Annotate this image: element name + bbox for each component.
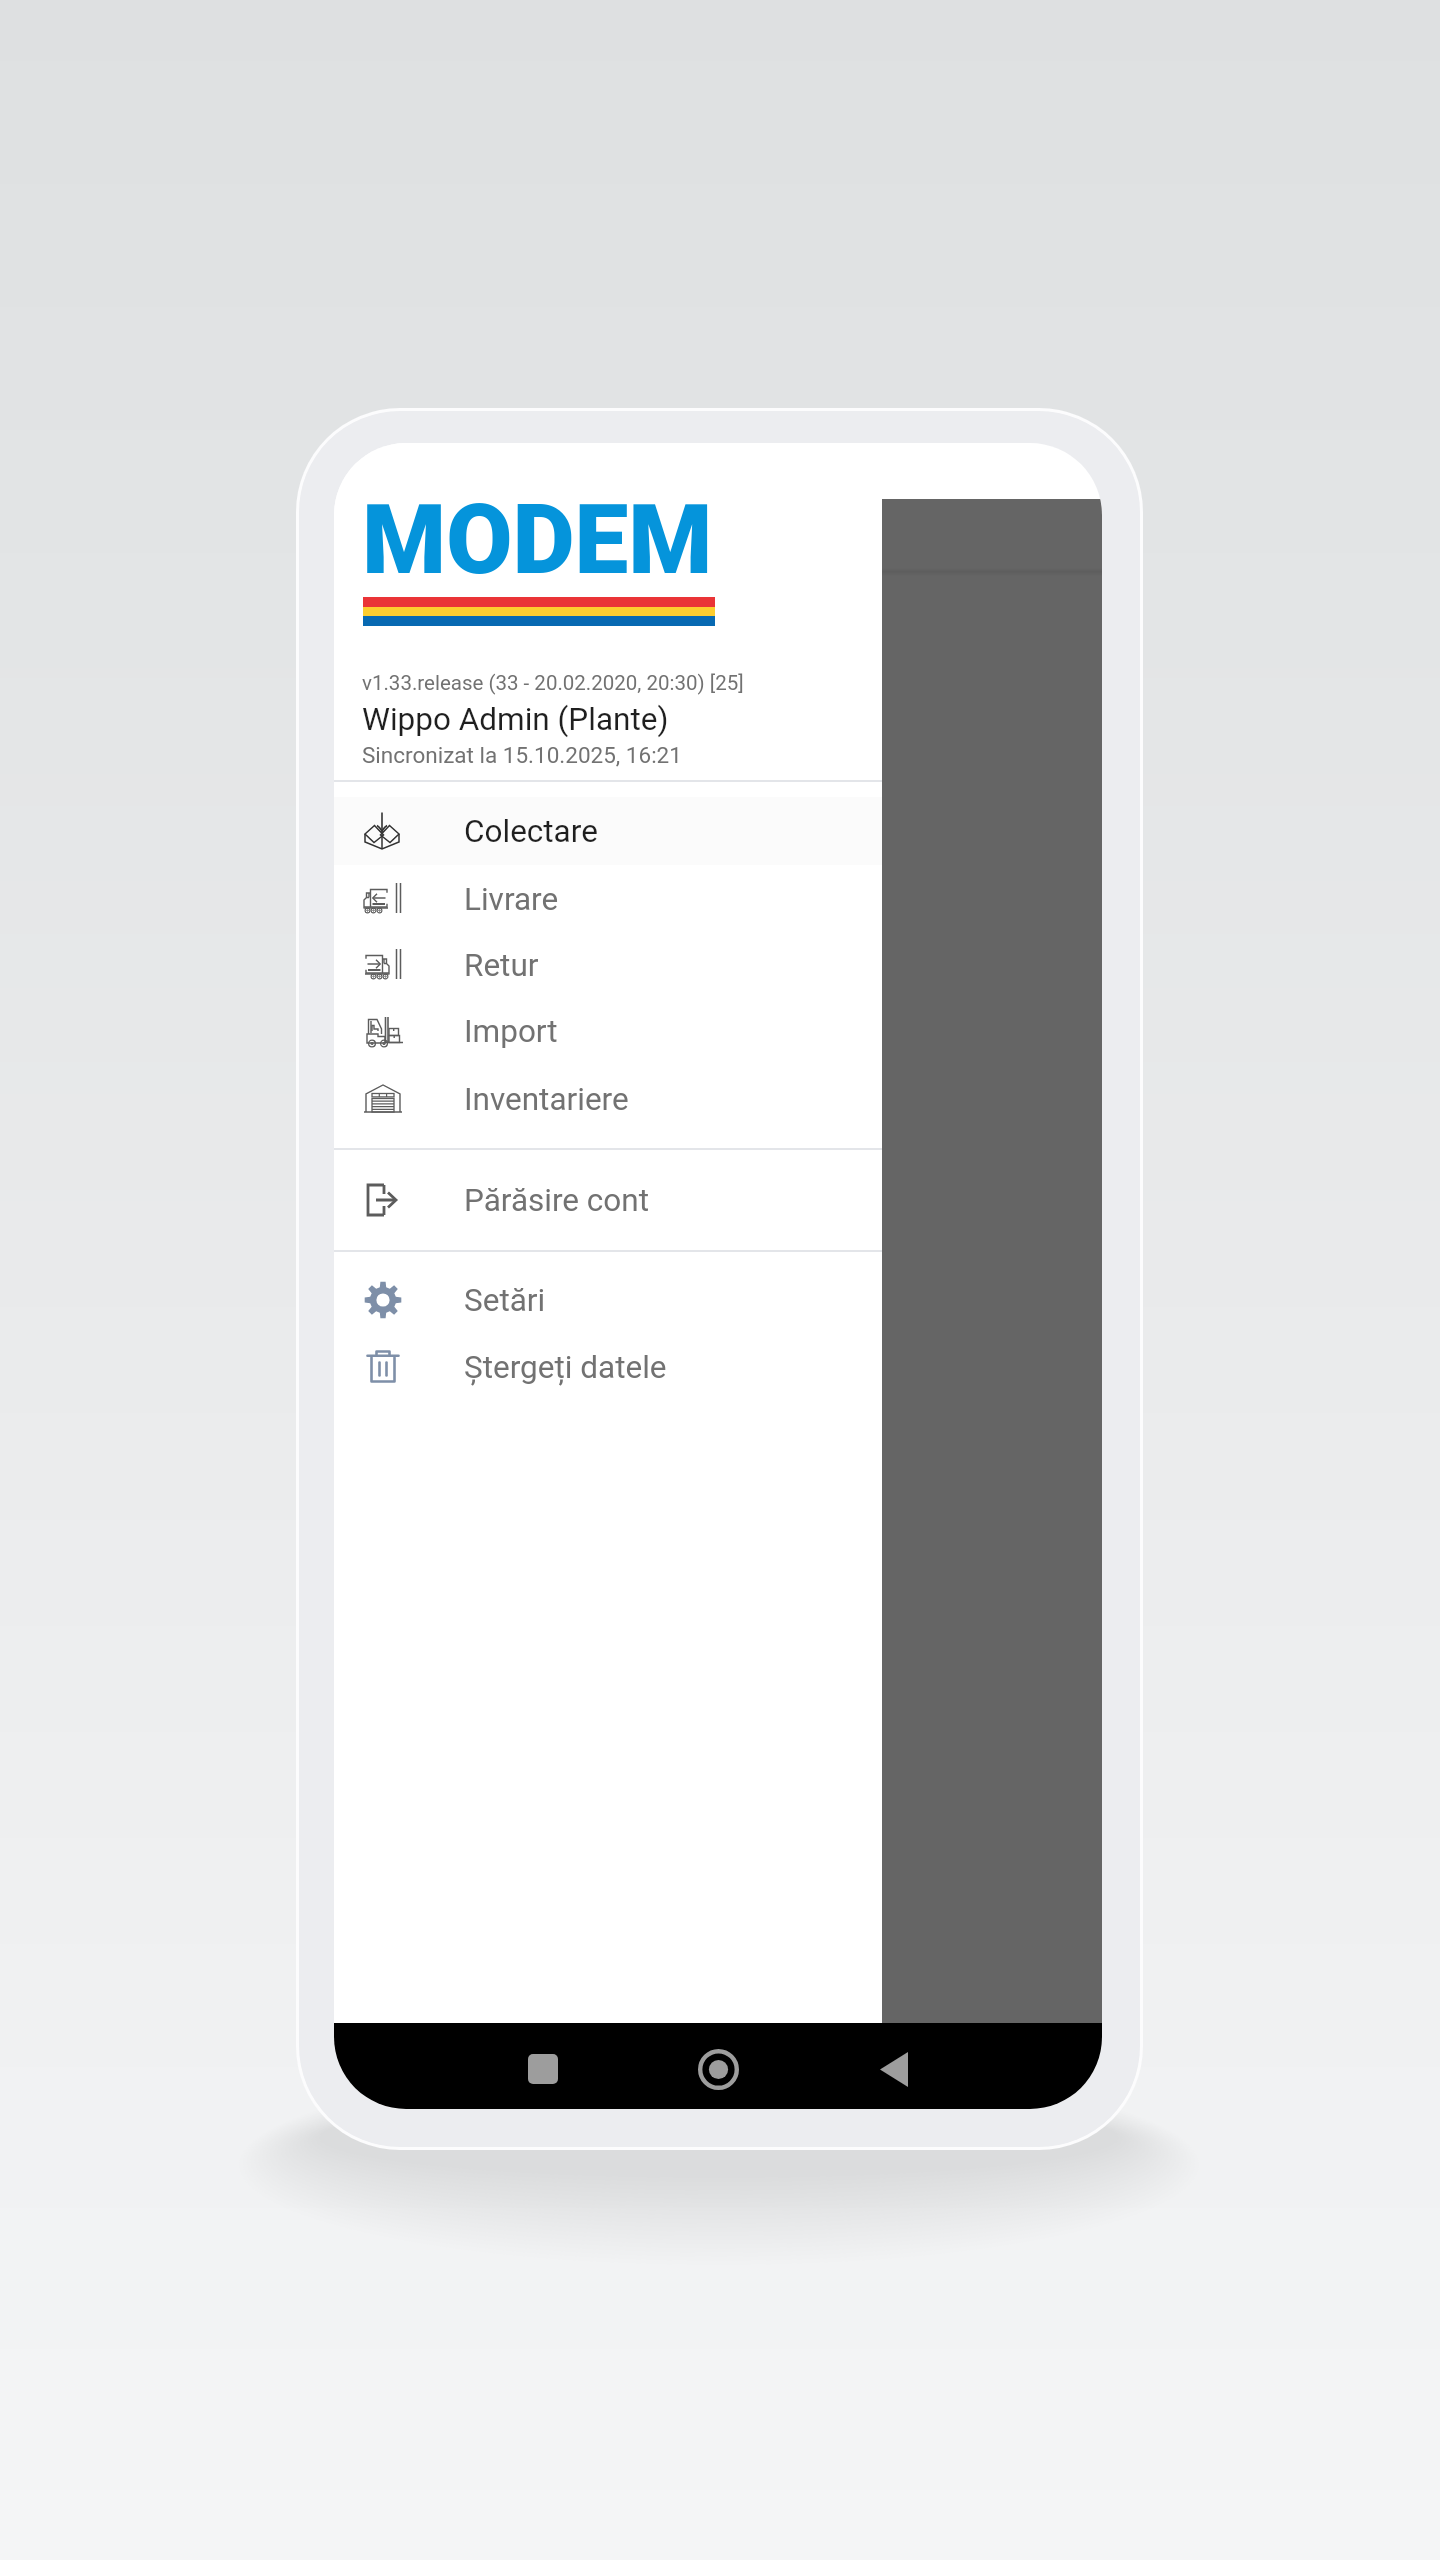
staticText: Părăsire cont (464, 1182, 650, 1219)
staticText: Sincronizat la 15.10.2025, 16:21 (362, 742, 682, 768)
staticText: Colectare (464, 813, 598, 850)
staticText: Inventariere (464, 1081, 629, 1118)
staticText: MODEM (362, 484, 713, 597)
button[interactable] (334, 998, 882, 1065)
button[interactable] (334, 798, 882, 865)
staticText: v1.33.release (33 - 20.02.2020, 20:30) [… (362, 671, 744, 695)
button[interactable] (334, 1334, 882, 1401)
staticText: Livrare (464, 881, 559, 918)
button[interactable] (334, 1167, 882, 1234)
button[interactable] (334, 1066, 882, 1133)
staticText: Setări (464, 1282, 546, 1319)
staticText: Import (464, 1013, 558, 1050)
button[interactable] (334, 932, 882, 999)
button[interactable] (334, 866, 882, 933)
button[interactable]: Home (698, 2049, 739, 2090)
staticText: Retur (464, 947, 539, 984)
button[interactable]: Back (880, 2052, 908, 2087)
staticText: Wippo Admin (Plante) (362, 701, 669, 738)
button[interactable] (334, 1267, 882, 1334)
button[interactable] (334, 797, 882, 865)
staticText: Ștergeți datele (464, 1349, 667, 1386)
button[interactable]: Recent apps (528, 2054, 558, 2084)
